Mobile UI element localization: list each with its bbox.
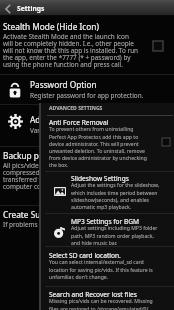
- staticText: ADVANCED SETTINGS: [49, 105, 103, 112]
- button[interactable]: Checkbox: [162, 138, 170, 146]
- button[interactable]: MP3 Settings for BGM: [41, 214, 174, 247]
- staticText: To prevent others from uninstalling Perf…: [49, 126, 147, 168]
- button[interactable]: Advanced Settings: [0, 105, 174, 145]
- staticText: Advanced Settings: [30, 114, 102, 125]
- staticText: Missing pics/vids can be recovered. Miss…: [49, 298, 161, 310]
- staticText: Create Support Ticket: [3, 209, 87, 220]
- button[interactable]: Backup photos/videos to PC: [0, 147, 174, 204]
- staticText: Adjust settings including MP3 folder pat…: [71, 225, 164, 246]
- staticText: Stealth Mode (Hide Icon): [3, 21, 99, 32]
- button[interactable]: Stealth Mode (Hide Icon): [0, 17, 174, 74]
- staticText: Password Option: [30, 79, 97, 90]
- staticText: Activate Stealth Mode and the launch ico…: [3, 32, 140, 69]
- staticText: You can select internal/external_sd card…: [49, 259, 156, 280]
- staticText: Adjust the settings for the slideshow, w…: [71, 182, 164, 210]
- button[interactable]: Select SD card location.: [41, 247, 174, 285]
- button[interactable]: Checkbox: [153, 41, 163, 51]
- staticText: Register password for app protection.: [30, 91, 170, 100]
- button[interactable]: Password Option: [0, 75, 174, 103]
- staticText: All pics/videos in the secret folder are…: [3, 161, 140, 191]
- button[interactable]: Create Support Ticket: [0, 206, 174, 236]
- staticText: Select SD card location.: [49, 251, 121, 260]
- button[interactable]: Slideshow Settings: [41, 172, 174, 213]
- staticText: Various advanced setting options.: [30, 126, 150, 135]
- staticText: MP3 Settings for BGM: [71, 217, 140, 226]
- staticText: If problems occur, contact the developer…: [3, 220, 140, 229]
- button[interactable]: Search and Recover lost files: [41, 287, 174, 310]
- staticText: Backup photos/videos to PC: [3, 150, 112, 161]
- staticText: Slideshow Settings: [71, 174, 129, 183]
- staticText: Search and Recover lost files: [49, 290, 137, 299]
- staticText: Settings: [17, 4, 45, 13]
- button[interactable]: Anti Force Removal: [41, 116, 174, 170]
- button[interactable]: Back: [0, 1, 16, 17]
- staticText: Anti Force Removal: [49, 118, 109, 127]
